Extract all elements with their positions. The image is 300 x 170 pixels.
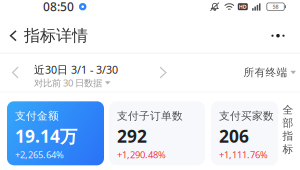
staticText: 所有终端 [243, 66, 287, 79]
staticText: HD [239, 3, 247, 10]
staticText: 近30日 3/1 - 3/30 [34, 62, 118, 77]
staticText: 指 [282, 129, 293, 143]
staticText: 部 [282, 116, 293, 129]
staticText: +2,265.64% [15, 148, 64, 161]
button[interactable]: Previous date range [0, 53, 30, 91]
staticText: 对比前 30 日数据 [34, 77, 102, 89]
staticText: 19.14万 [15, 124, 77, 147]
staticText: 支付子订单数 [117, 109, 183, 122]
staticText: 指标详情 [24, 26, 88, 46]
button[interactable]: 所有终端 [243, 53, 296, 91]
button[interactable]: 支付买家数 [211, 101, 278, 165]
staticText: 支付买家数 [219, 109, 274, 122]
staticText: +1,111.76% [219, 148, 268, 161]
staticText: 58 [272, 3, 278, 10]
staticText: 支付金额 [15, 109, 59, 122]
staticText: +1,290.48% [117, 148, 166, 161]
staticText: 206 [219, 124, 249, 147]
staticText: 292 [117, 124, 147, 147]
button[interactable]: 支付子订单数 [109, 101, 205, 165]
button[interactable]: Back [0, 19, 88, 53]
button[interactable]: Next date range [150, 53, 176, 91]
staticText: 08:50 [43, 0, 74, 15]
button[interactable]: 近30日 3/1 - 3/30 [30, 53, 150, 91]
staticText: 全 [282, 103, 293, 116]
staticText: 标 [282, 143, 293, 156]
button[interactable]: 全 [280, 101, 296, 165]
button[interactable]: 支付金额 [7, 101, 104, 165]
button[interactable]: More options [261, 21, 295, 51]
